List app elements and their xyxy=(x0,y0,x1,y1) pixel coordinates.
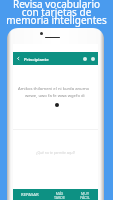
button[interactable]: More options xyxy=(89,55,97,63)
button[interactable]: Help xyxy=(81,55,89,63)
button[interactable]: MÁS TARDE xyxy=(46,189,72,200)
staticText: REPASAR xyxy=(21,192,39,198)
staticText: MÁS TARDE xyxy=(54,191,65,200)
staticText: wewe, uwo fa fe wwa wgefo di xyxy=(25,93,85,99)
button[interactable]: REPASAR xyxy=(13,189,46,200)
button[interactable]: Back xyxy=(13,52,98,65)
button[interactable]: MUY FÁCIL xyxy=(72,189,98,200)
staticText: ¿Qué no te permite aquí? xyxy=(13,150,98,154)
staticText: Amikos thilomeni el ni kurda anumo xyxy=(18,86,90,92)
staticText: Revisa vocabulario con tarjetas de memor… xyxy=(0,0,113,27)
other: Back xyxy=(15,55,22,62)
staticText: Principiante xyxy=(24,56,49,62)
staticText: MUY FÁCIL xyxy=(80,191,90,200)
button[interactable]: Play audio xyxy=(55,103,59,107)
